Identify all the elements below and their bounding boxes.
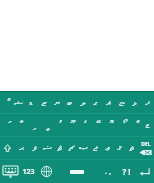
button[interactable]: ޭ — [89, 114, 102, 136]
button[interactable]: ޡ — [125, 137, 137, 159]
staticText: ޟ — [43, 143, 52, 153]
staticText: ޡ — [129, 143, 134, 153]
button[interactable]: ޘ — [53, 137, 65, 159]
staticText: ޙ — [19, 143, 24, 153]
staticText: ޖ — [93, 143, 98, 153]
button[interactable]: ޫ — [63, 114, 76, 136]
button[interactable]: ޗ — [65, 137, 77, 159]
button[interactable]: ބ — [63, 92, 76, 113]
button[interactable]: ޙ — [15, 137, 28, 159]
button[interactable]: ގ — [89, 92, 102, 113]
button[interactable]: ޑ — [24, 92, 37, 113]
staticText: ޥ — [32, 143, 37, 153]
button[interactable]: Delete — [137, 137, 154, 159]
staticText: . , — [105, 167, 111, 177]
button[interactable]: ޮ — [102, 114, 115, 136]
staticText: ލ — [80, 98, 86, 108]
button[interactable]: ? ! — [117, 160, 135, 183]
button[interactable]: ޏ — [115, 92, 128, 113]
button[interactable]: ޟ — [41, 137, 53, 159]
button[interactable]: ީ — [37, 114, 50, 136]
staticText: DEL — [141, 141, 151, 148]
button[interactable]: ޢ — [101, 137, 113, 159]
button[interactable]: ު — [50, 114, 63, 136]
staticText: ޒ — [41, 98, 47, 108]
button[interactable]: Space — [55, 160, 99, 183]
staticText: 123 — [22, 167, 35, 177]
staticText: ޞ — [79, 143, 88, 153]
button[interactable]: . , — [99, 160, 117, 183]
button[interactable]: 123 — [20, 160, 37, 183]
button[interactable]: ަ — [0, 114, 12, 136]
staticText: ޅ — [132, 98, 137, 108]
button[interactable]: ޥ — [28, 137, 41, 159]
button[interactable]: ޚ — [141, 92, 154, 113]
button[interactable]: ޯ — [115, 114, 128, 136]
staticText: ޘ — [57, 143, 62, 153]
button[interactable]: ޞ — [77, 137, 89, 159]
button[interactable]: Switch keyboard — [0, 160, 20, 183]
button[interactable]: ާ — [12, 114, 24, 136]
button[interactable]: ލ — [76, 92, 89, 113]
button[interactable]: Enter — [135, 160, 154, 183]
staticText: ? ! — [122, 166, 131, 177]
button[interactable]: ޅ — [128, 92, 141, 113]
button[interactable]: ޣ — [102, 92, 115, 113]
button[interactable]: ެ — [76, 114, 89, 136]
button[interactable]: ޤ — [113, 137, 125, 159]
button[interactable]: ޔ — [50, 92, 63, 113]
staticText: ޝ — [14, 98, 23, 108]
staticText: ޗ — [68, 143, 75, 153]
staticText: ޢ — [105, 143, 110, 153]
staticText: ޏ — [119, 98, 125, 108]
staticText: ޑ — [29, 98, 33, 108]
button[interactable]: ި — [24, 114, 37, 136]
button[interactable]: Change language — [37, 160, 55, 183]
button[interactable]: ޒ — [37, 92, 50, 113]
button[interactable]: ް — [0, 92, 12, 113]
button[interactable]: ް — [128, 114, 141, 136]
button[interactable]: Shift — [0, 137, 15, 159]
button[interactable]: ޝ — [12, 92, 24, 113]
button[interactable]: ޱ — [141, 114, 154, 136]
staticText: ބ — [67, 98, 72, 108]
staticText: ޔ — [54, 98, 60, 108]
staticText: ގ — [93, 98, 98, 108]
staticText: ޣ — [106, 98, 111, 108]
staticText: ޱ — [145, 120, 150, 130]
staticText: ޚ — [145, 98, 150, 108]
button[interactable]: ޖ — [89, 137, 101, 159]
staticText: ޤ — [117, 143, 122, 153]
